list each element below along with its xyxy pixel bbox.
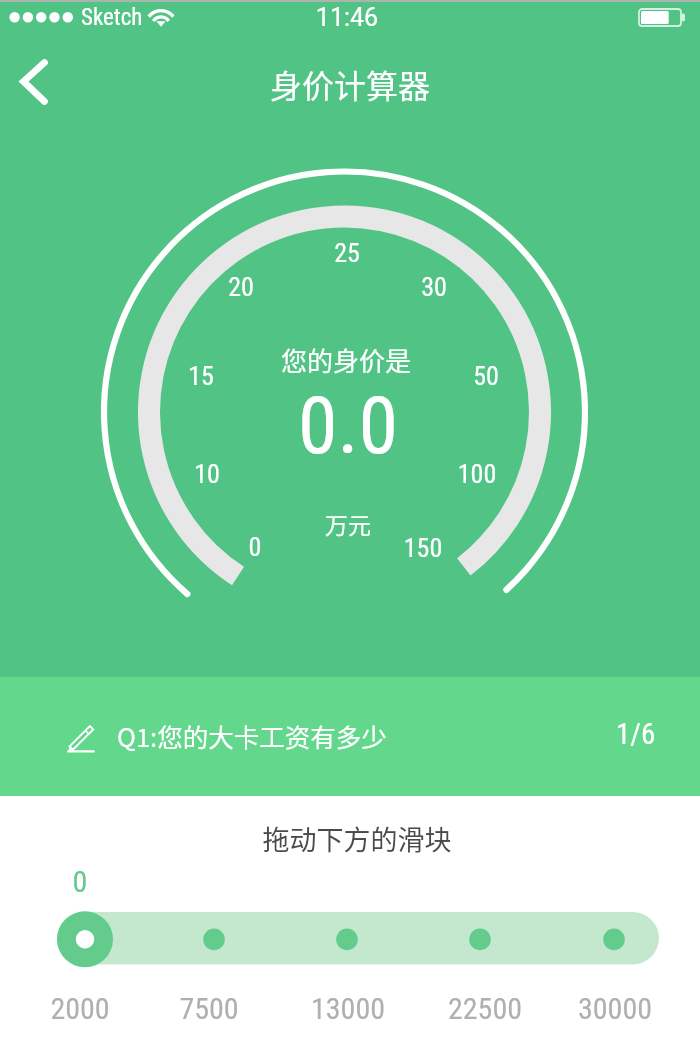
staticText: Sketch xyxy=(81,4,143,31)
staticText: 10 xyxy=(162,459,252,489)
staticText: 7500 xyxy=(139,991,279,1026)
staticText: 1/6 xyxy=(616,717,656,751)
staticText: 11:46 xyxy=(297,3,397,32)
staticText: 30000 xyxy=(545,991,685,1026)
staticText: 0.0 xyxy=(198,379,498,473)
staticText: 15 xyxy=(156,361,246,391)
staticText: 50 xyxy=(441,361,531,391)
staticText: 0 xyxy=(210,532,300,562)
staticText: 万元 xyxy=(248,507,448,540)
staticText: 13000 xyxy=(278,991,418,1026)
button[interactable]: Q1:您的大卡工资有多少 xyxy=(0,677,700,796)
staticText: 25 xyxy=(302,238,392,268)
staticText: 拖动下方的滑块 xyxy=(157,819,557,858)
staticText: 150 xyxy=(378,533,468,563)
staticText: 22500 xyxy=(415,991,555,1026)
staticText: 0 xyxy=(40,864,120,899)
staticText: 身价计算器 xyxy=(0,61,700,107)
staticText: 100 xyxy=(432,459,522,489)
button[interactable]: Back xyxy=(8,46,80,118)
staticText: 20 xyxy=(196,272,286,302)
staticText: 30 xyxy=(389,272,479,302)
staticText: Q1:您的大卡工资有多少 xyxy=(117,717,387,754)
staticText: 您的身价是 xyxy=(196,341,496,379)
staticText: 2000 xyxy=(10,991,150,1026)
